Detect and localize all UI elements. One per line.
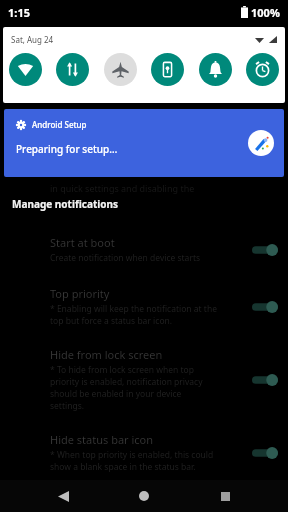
button[interactable]: Android Setup: [4, 109, 284, 177]
staticText: 1:15: [8, 5, 30, 20]
staticText: top but force a status bar icon.: [50, 315, 173, 327]
button[interactable]: Recents: [207, 480, 243, 512]
button[interactable]: Alarm: [246, 53, 279, 86]
staticText: Create notification when device starts: [50, 252, 201, 264]
staticText: should be enabled in your device: [50, 388, 182, 400]
staticText: Hide from lock screen: [50, 347, 163, 362]
button[interactable]: Mobile data: [56, 53, 89, 86]
staticText: * When top priority is enabled, this cou…: [50, 449, 214, 461]
staticText: show a blank space in the status bar.: [50, 461, 196, 473]
staticText: settings.: [50, 400, 85, 412]
staticText: * Enabling will keep the notification at…: [50, 303, 217, 315]
button[interactable]: Start at boot: [0, 235, 288, 264]
staticText: in quick settings and disabling the: [50, 182, 195, 194]
staticText: Hide status bar icon: [50, 432, 154, 447]
staticText: Sat, Aug 24: [11, 34, 54, 45]
button[interactable]: Airplane mode: [104, 53, 137, 86]
button[interactable]: Back: [45, 480, 81, 512]
staticText: Android Setup: [32, 119, 87, 130]
button[interactable]: Top priority: [0, 286, 288, 327]
button[interactable]: [252, 243, 278, 257]
button[interactable]: [252, 446, 278, 460]
staticText: 100%: [251, 5, 280, 20]
button[interactable]: Setup wizard: [248, 130, 274, 156]
staticText: priority is enabled, notification privac…: [50, 376, 203, 388]
button[interactable]: Flashlight: [151, 53, 184, 86]
button[interactable]: Hide from lock screen: [0, 347, 288, 412]
staticText: Manage notifications: [12, 197, 118, 211]
staticText: Start at boot: [50, 235, 115, 250]
button[interactable]: Hide status bar icon: [0, 432, 288, 473]
button[interactable]: [252, 373, 278, 387]
staticText: Top priority: [50, 286, 110, 301]
staticText: Preparing for setup…: [16, 142, 118, 156]
button[interactable]: Home: [126, 480, 162, 512]
staticText: * To hide from lock screen when top: [50, 364, 194, 376]
button[interactable]: Wi-Fi: [9, 53, 42, 86]
button[interactable]: Notifications: [199, 53, 232, 86]
button[interactable]: [252, 300, 278, 314]
